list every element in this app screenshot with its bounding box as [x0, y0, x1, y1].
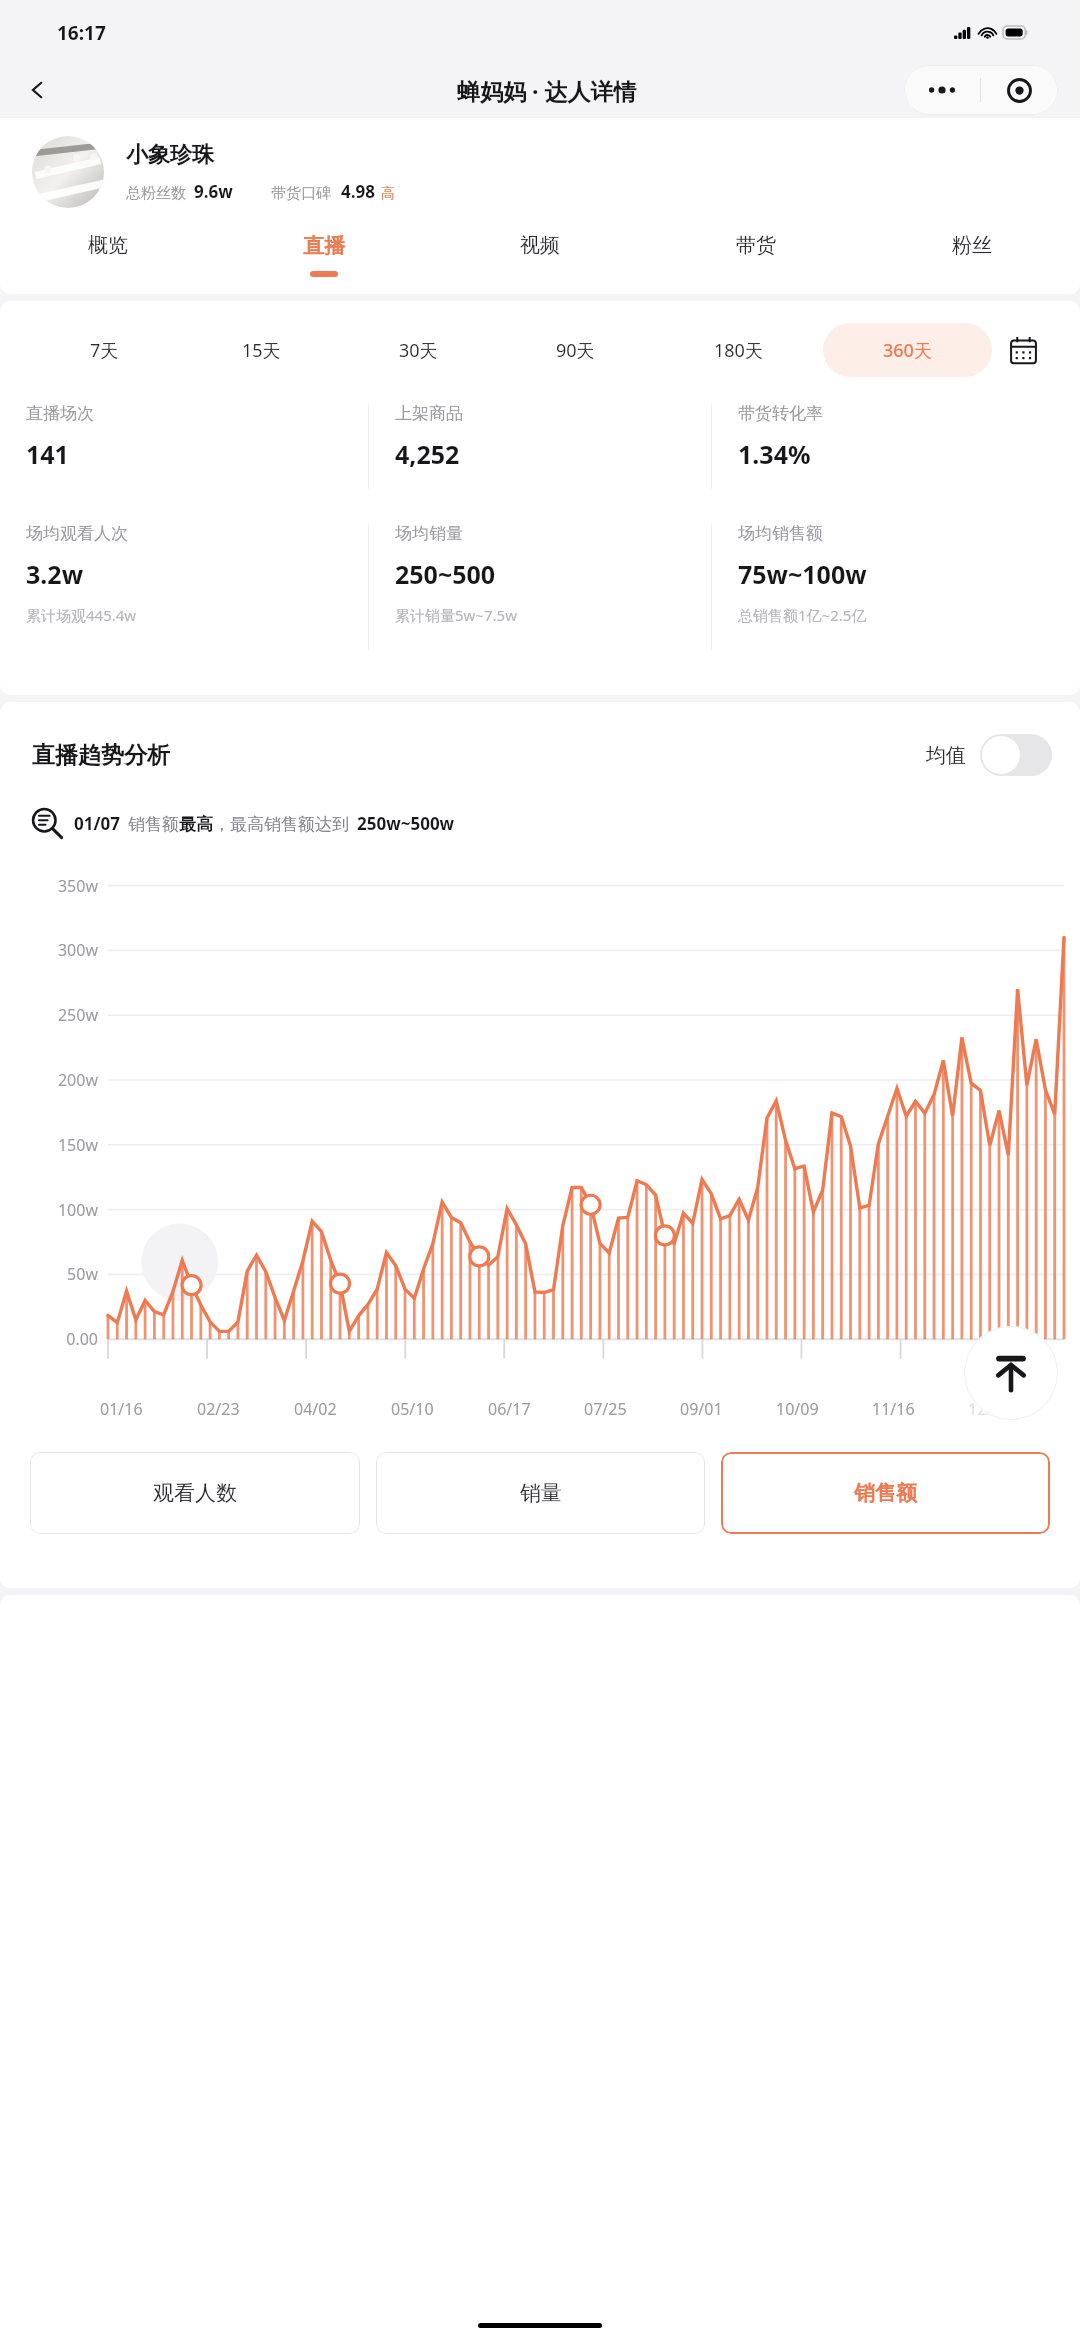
staticText: 高 [381, 185, 395, 203]
staticText: 11/16 [872, 1398, 915, 1420]
button[interactable]: 15天 [183, 323, 340, 377]
staticText: 累计场观445.4w [26, 605, 137, 625]
staticText: 05/10 [391, 1398, 434, 1420]
button[interactable]: Scroll to top [964, 1326, 1058, 1420]
button[interactable]: 场均销量 [395, 523, 711, 651]
button[interactable]: 销售额 [721, 1452, 1050, 1534]
staticText: 累计销量5w~7.5w [395, 605, 517, 625]
staticText: 带货 [736, 233, 776, 258]
button[interactable]: Back [16, 68, 60, 112]
staticText: 10/09 [776, 1398, 819, 1420]
button[interactable]: 场均销售额 [738, 523, 1054, 651]
button[interactable]: 360天 [823, 323, 992, 377]
staticText: 01/16 [100, 1398, 143, 1420]
staticText: 75w~100w [738, 557, 867, 591]
staticText: 350w [26, 875, 98, 897]
staticText: ， [213, 814, 230, 835]
staticText: 场均销量 [395, 523, 463, 544]
staticText: 30天 [399, 338, 438, 363]
staticText: 50w [26, 1263, 98, 1285]
button[interactable]: 销量 [376, 1452, 705, 1534]
button[interactable]: 上架商品 [395, 403, 711, 489]
staticText: 总粉丝数 [126, 184, 186, 203]
staticText: 直播 [303, 233, 345, 259]
button[interactable]: 30天 [340, 323, 497, 377]
staticText: 07/25 [584, 1398, 627, 1420]
staticText: 0.00 [26, 1328, 98, 1350]
staticText: 150w [26, 1134, 98, 1156]
staticText: 90天 [556, 338, 595, 363]
staticText: 最高销售额达到 [230, 814, 349, 835]
button[interactable]: 粉丝 [864, 228, 1080, 288]
staticText: 16:17 [57, 20, 106, 46]
staticText: 300w [26, 939, 98, 961]
staticText: 04/02 [294, 1398, 337, 1420]
staticText: 100w [26, 1199, 98, 1221]
staticText: 180天 [714, 338, 763, 363]
button[interactable]: 均值 [926, 734, 1052, 776]
button[interactable]: 小象珍珠 [32, 126, 1056, 218]
staticText: 直播趋势分析 [32, 741, 170, 770]
staticText: 蝉妈妈 · 达人详情 [457, 75, 637, 106]
staticText: 250w~500w [357, 812, 455, 835]
staticText: 09/01 [680, 1398, 723, 1420]
staticText: 250~500 [395, 557, 496, 591]
staticText: 02/23 [197, 1398, 240, 1420]
button[interactable]: 180天 [654, 323, 823, 377]
button[interactable]: 视频 [432, 228, 648, 288]
button[interactable]: 带货 [648, 228, 864, 288]
staticText: 上架商品 [395, 403, 463, 424]
staticText: 销售额 [854, 1480, 917, 1506]
button[interactable]: 直播场次 [26, 403, 368, 489]
staticText: 带货口碑 [271, 184, 331, 203]
staticText: 观看人数 [153, 1480, 237, 1506]
staticText: 最高 [179, 814, 213, 835]
staticText: 12/24 [968, 1398, 1011, 1420]
staticText: 直播场次 [26, 403, 94, 424]
button[interactable]: More [904, 65, 980, 115]
staticText: 4,252 [395, 437, 460, 471]
staticText: 3.2w [26, 557, 84, 591]
button[interactable]: 观看人数 [30, 1452, 360, 1534]
staticText: 1.34% [738, 437, 811, 471]
staticText: 销售额 [128, 814, 179, 835]
staticText: 141 [26, 437, 69, 471]
staticText: 概览 [88, 233, 128, 258]
staticText: 带货转化率 [738, 403, 823, 424]
staticText: 06/17 [488, 1398, 531, 1420]
staticText: 15天 [242, 338, 281, 363]
staticText: 场均观看人次 [26, 523, 128, 544]
staticText: 4.98 [341, 180, 375, 203]
staticText: 200w [26, 1069, 98, 1091]
button[interactable]: 直播 [216, 228, 432, 288]
staticText: 均值 [926, 743, 966, 768]
staticText: 总销售额1亿~2.5亿 [738, 605, 867, 625]
staticText: 01/07 [74, 812, 120, 835]
staticText: 场均销售额 [738, 523, 823, 544]
button[interactable]: Pick date range [992, 323, 1054, 377]
staticText: 360天 [883, 338, 932, 363]
button[interactable]: 概览 [0, 228, 216, 288]
staticText: 粉丝 [952, 233, 992, 258]
button[interactable]: 90天 [497, 323, 654, 377]
button[interactable]: 7天 [26, 323, 183, 377]
button[interactable]: 带货转化率 [738, 403, 1054, 489]
staticText: 销量 [520, 1480, 562, 1506]
staticText: 250w [26, 1004, 98, 1026]
staticText: 小象珍珠 [126, 141, 214, 169]
staticText: 9.6w [194, 180, 233, 203]
button[interactable]: 场均观看人次 [26, 523, 368, 651]
staticText: 7天 [90, 338, 119, 363]
button[interactable]: Close mini program [981, 65, 1058, 115]
staticText: 视频 [520, 233, 560, 258]
